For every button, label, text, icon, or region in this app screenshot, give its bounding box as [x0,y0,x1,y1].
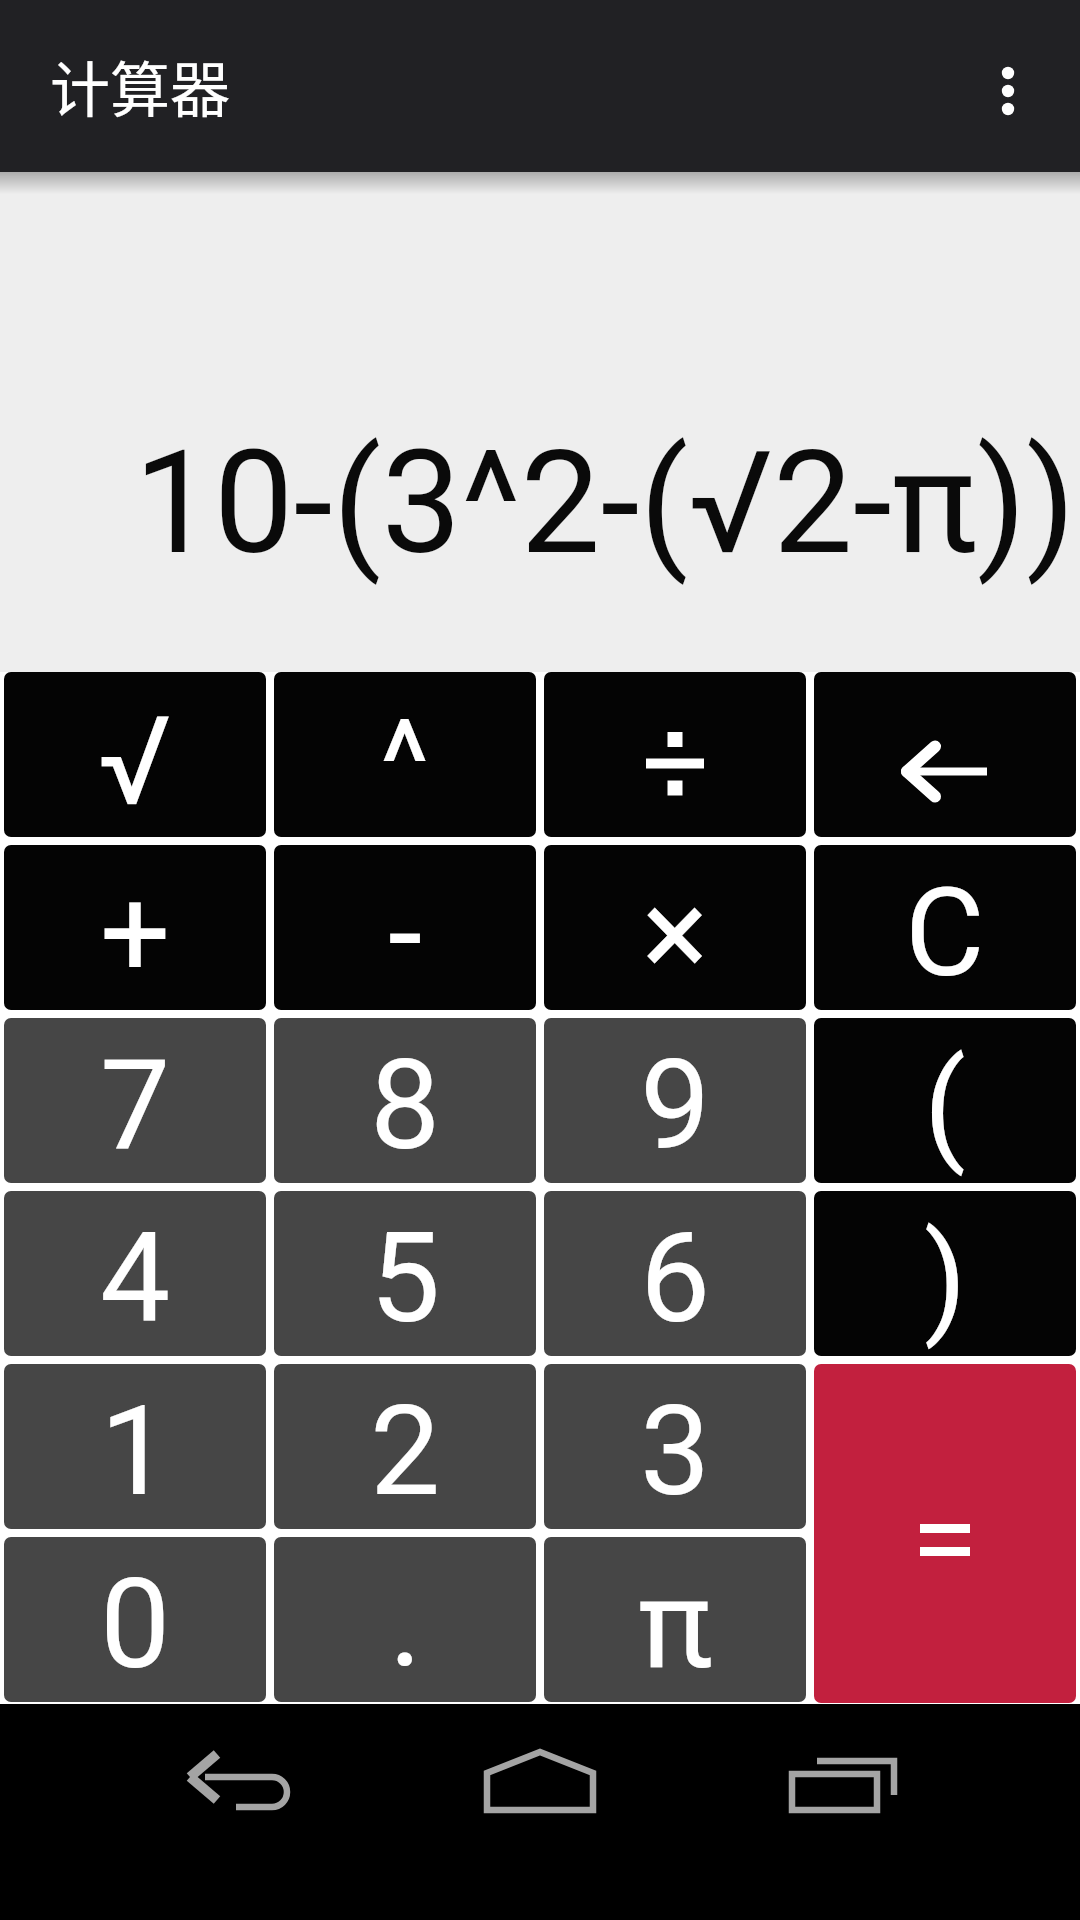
button[interactable] [764,1730,920,1850]
button[interactable] [544,672,806,837]
staticText: + [100,861,171,1006]
button[interactable]: ) [814,1191,1076,1356]
button[interactable]: 5 [274,1191,536,1356]
staticText: - [388,861,423,1006]
button[interactable]: + [4,845,266,1010]
button[interactable]: 1 [4,1364,266,1529]
staticText: 8 [370,1032,441,1178]
button[interactable]: 2 [274,1364,536,1529]
button[interactable]: × [544,845,806,1010]
button[interactable]: 9 [544,1018,806,1183]
button[interactable]: C [814,845,1076,1010]
button[interactable]: 7 [4,1018,266,1183]
staticText: √ [98,690,172,834]
button[interactable]: 6 [544,1191,806,1356]
staticText: . [389,1549,422,1695]
staticText: 4 [100,1205,171,1351]
staticText: 0 [100,1551,171,1697]
button[interactable] [160,1730,316,1850]
button[interactable] [980,0,1080,172]
button[interactable] [814,672,1076,837]
button[interactable]: 4 [4,1191,266,1356]
button[interactable]: 8 [274,1018,536,1183]
staticText: × [642,861,709,1006]
staticText: 10-(3^2-(√2-π)) [134,420,1076,586]
staticText: π [638,1551,713,1697]
staticText: 2 [370,1378,441,1524]
staticText: 计算器 [50,42,230,129]
button[interactable]: ^ [274,672,536,837]
button[interactable]: - [274,845,536,1010]
button[interactable]: π [544,1537,806,1702]
button[interactable]: 3 [544,1364,806,1529]
staticText: ) [924,1208,967,1351]
button[interactable]: ( [814,1018,1076,1183]
button[interactable]: . [274,1537,536,1702]
button[interactable]: 0 [4,1537,266,1702]
staticText: 1 [100,1378,171,1524]
staticText: 7 [100,1032,171,1178]
staticText: 9 [640,1032,711,1178]
button[interactable] [462,1730,618,1850]
staticText: ( [924,1035,966,1178]
staticText: 3 [640,1378,711,1524]
staticText: 6 [640,1205,711,1351]
staticText: 5 [370,1205,441,1351]
button[interactable] [814,1364,1076,1703]
button[interactable]: √ [4,672,266,837]
staticText: ^ [380,694,430,832]
staticText: C [905,862,985,1005]
